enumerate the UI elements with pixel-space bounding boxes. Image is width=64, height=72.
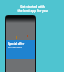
staticText: the best app for you <box>17 9 48 13</box>
staticText: Get started with <box>20 5 45 9</box>
button[interactable]: Special offer <box>6 40 35 59</box>
staticText: for new users <box>8 46 22 49</box>
staticText: Special offer <box>8 42 25 46</box>
